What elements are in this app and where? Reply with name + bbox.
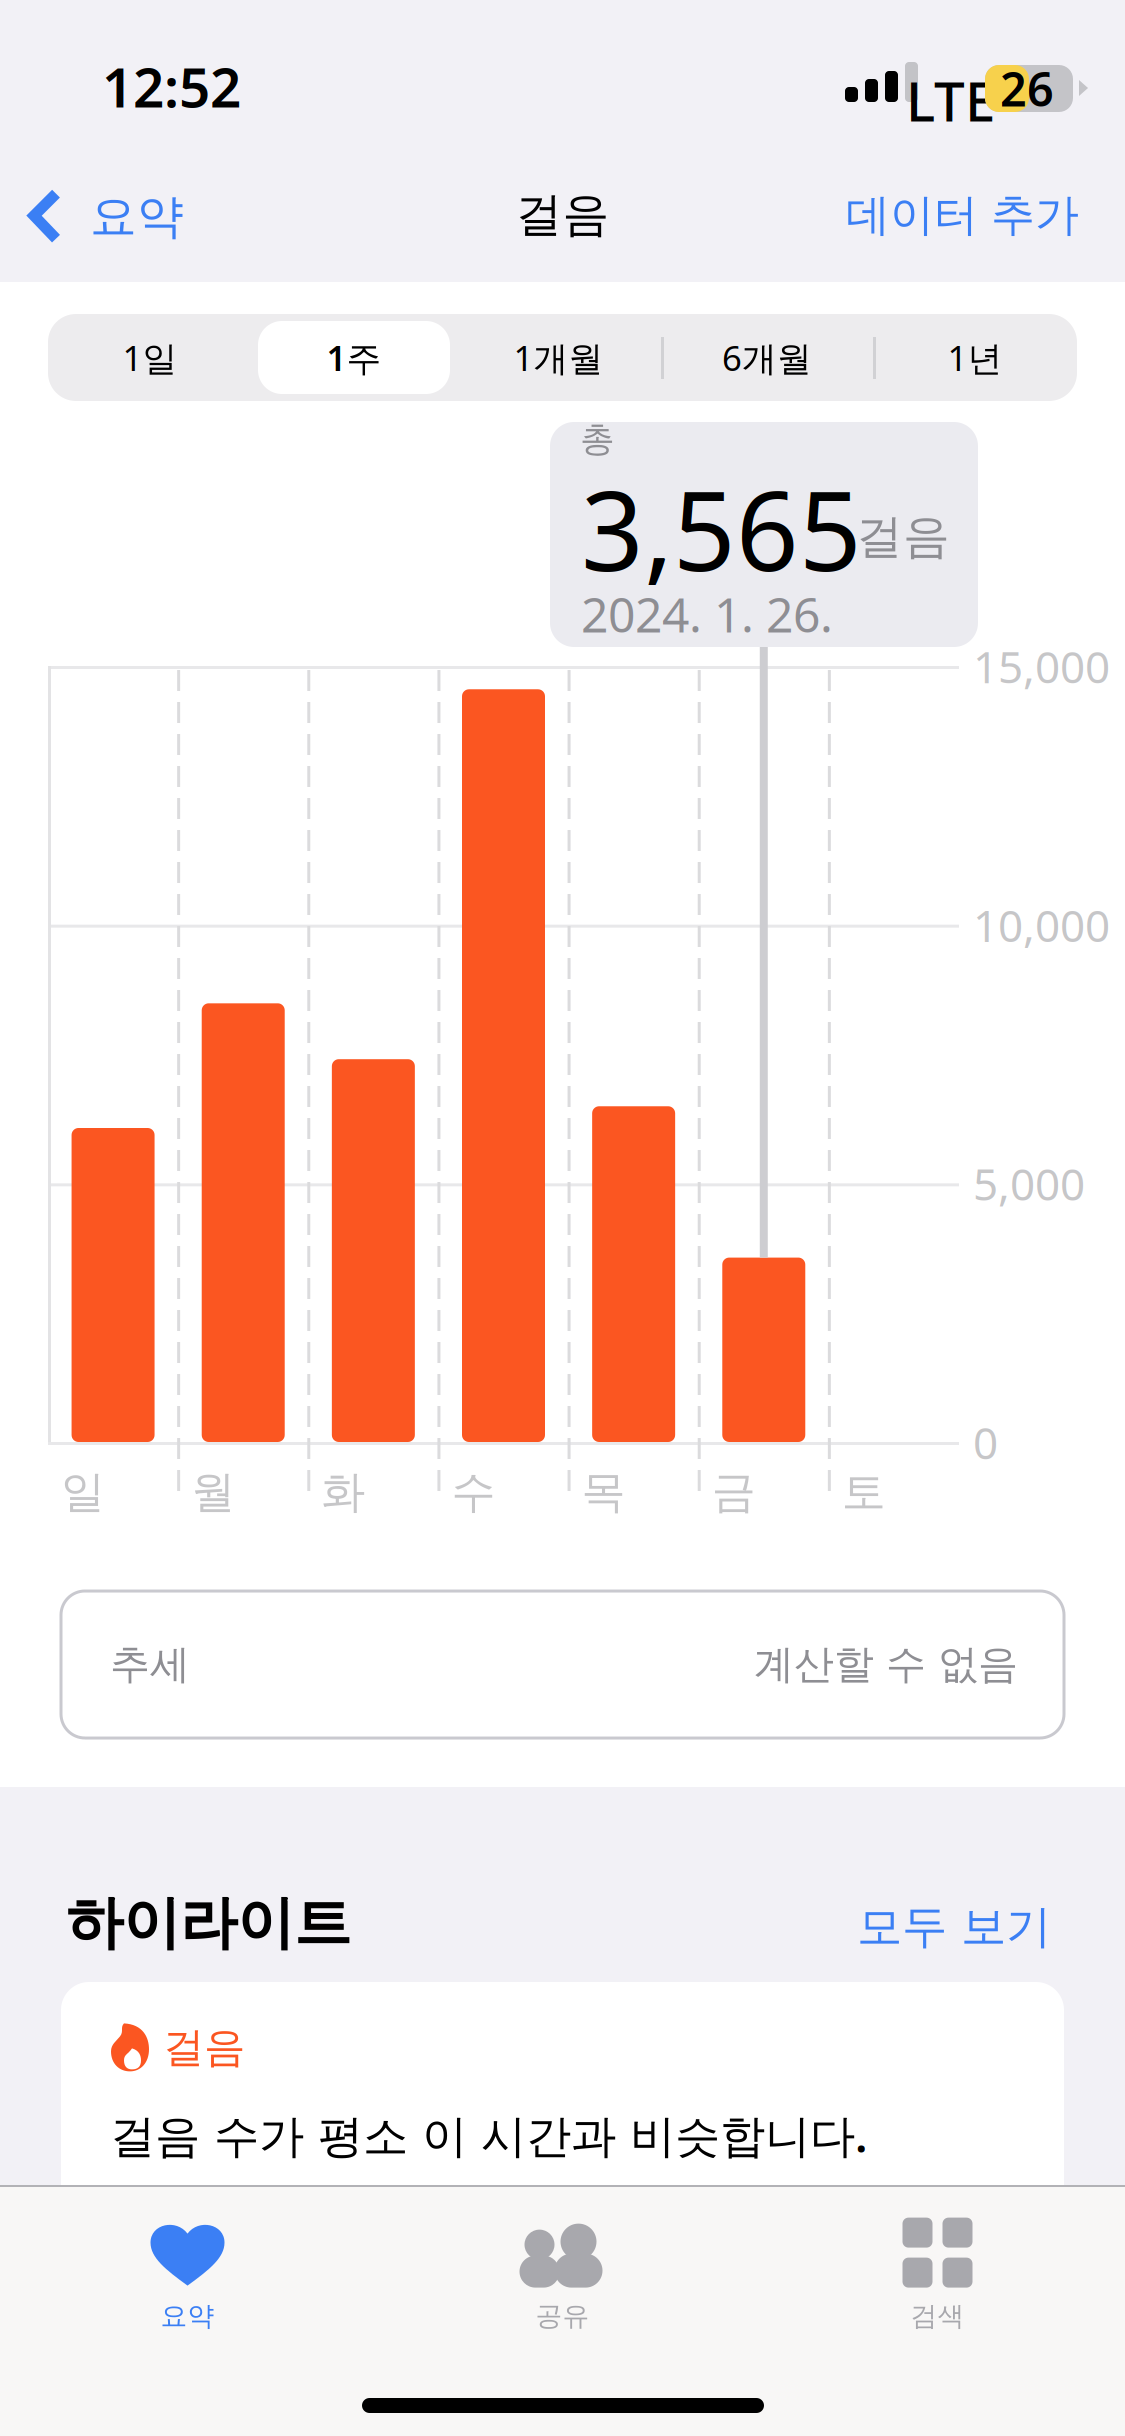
staticText: 0	[973, 1413, 998, 1471]
staticText: LTE	[906, 64, 995, 137]
button[interactable]: 요약	[0, 2210, 375, 2340]
button[interactable]: 공유	[375, 2210, 750, 2340]
staticText: 2024. 1. 26.	[581, 582, 833, 646]
staticText: 1일	[122, 334, 177, 380]
staticText: 3,565	[581, 456, 862, 601]
staticText: 금	[712, 1465, 756, 1519]
staticText: 15,000	[973, 637, 1110, 695]
staticText: 걸음 수가 평소 이 시간과 비슷합니다.	[110, 2105, 868, 2165]
staticText: 6개월	[722, 334, 812, 380]
staticText: 목	[582, 1465, 626, 1519]
staticText: 화	[321, 1465, 365, 1519]
button[interactable]: 데이터 추가	[830, 172, 1095, 258]
staticText: 1주	[326, 334, 381, 380]
staticText: 계산할 수 없음	[754, 1640, 1018, 1689]
staticText: 걸음	[856, 508, 950, 565]
staticText: 10,000	[973, 896, 1110, 954]
staticText: 검색	[910, 2300, 964, 2332]
button[interactable]: 1년	[873, 314, 1077, 401]
button[interactable]: 1일	[48, 314, 252, 401]
button[interactable]: 6개월	[661, 314, 873, 401]
staticText: 일	[61, 1465, 105, 1519]
staticText: 걸음	[163, 2022, 245, 2073]
staticText: 26	[1000, 57, 1054, 119]
staticText: 모두 보기	[857, 1899, 1051, 1955]
staticText: 수	[451, 1465, 495, 1519]
button[interactable]: 1주	[252, 314, 456, 401]
staticText: 공유	[535, 2300, 589, 2332]
staticText: 걸음	[515, 186, 609, 243]
staticText: 요약	[160, 2300, 214, 2332]
staticText: 추세	[110, 1640, 190, 1689]
staticText: 1년	[947, 334, 1002, 380]
staticText: 요약	[90, 188, 184, 245]
staticText: 월	[191, 1465, 235, 1519]
button[interactable]: 1개월	[456, 314, 661, 401]
button[interactable]: 요약	[12, 172, 200, 261]
staticText: 데이터 추가	[846, 188, 1079, 242]
button[interactable]: 추세	[61, 1591, 1064, 1738]
staticText: 총	[580, 418, 615, 461]
staticText: 토	[842, 1465, 886, 1519]
staticText: 12:52	[102, 50, 241, 123]
button[interactable]: 걸음	[61, 1982, 1064, 2242]
button[interactable]: 검색	[750, 2210, 1125, 2340]
staticText: 5,000	[973, 1154, 1085, 1213]
button[interactable]: 모두 보기	[700, 1899, 1051, 1955]
staticText: 하이라이트	[66, 1888, 351, 1958]
staticText: 1개월	[513, 334, 603, 380]
